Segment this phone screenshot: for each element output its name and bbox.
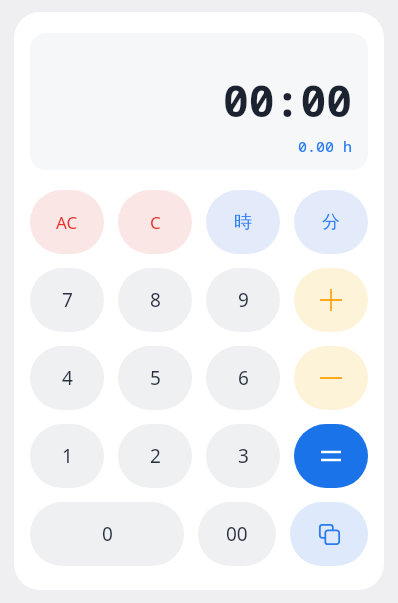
staticText: 0.00 h bbox=[297, 136, 352, 156]
staticText: 分 bbox=[322, 211, 340, 234]
button[interactable]: 分 bbox=[294, 190, 368, 254]
staticText: 時 bbox=[234, 211, 252, 234]
button[interactable]: C bbox=[118, 190, 192, 254]
staticText: 6 bbox=[238, 365, 249, 391]
button[interactable]: 7 bbox=[30, 268, 104, 332]
button[interactable]: 時 bbox=[206, 190, 280, 254]
button[interactable]: Minus bbox=[294, 346, 368, 410]
button[interactable]: Equals bbox=[294, 424, 368, 488]
staticText: 7 bbox=[62, 287, 73, 313]
staticText: 4 bbox=[62, 365, 73, 391]
button[interactable]: 5 bbox=[118, 346, 192, 410]
staticText: 8 bbox=[150, 287, 161, 313]
button[interactable]: 1 bbox=[30, 424, 104, 488]
staticText: 0 bbox=[102, 521, 113, 547]
button[interactable]: 8 bbox=[118, 268, 192, 332]
button[interactable]: 6 bbox=[206, 346, 280, 410]
staticText: 00:00 bbox=[223, 71, 352, 130]
button[interactable]: 2 bbox=[118, 424, 192, 488]
staticText: 3 bbox=[238, 443, 249, 469]
button[interactable]: 9 bbox=[206, 268, 280, 332]
staticText: 2 bbox=[150, 443, 161, 469]
button[interactable]: Plus bbox=[294, 268, 368, 332]
staticText: 1 bbox=[62, 443, 73, 469]
staticText: 00 bbox=[226, 521, 248, 547]
button[interactable]: Copy bbox=[290, 502, 368, 566]
button[interactable]: 0 bbox=[30, 502, 184, 566]
button[interactable]: 4 bbox=[30, 346, 104, 410]
staticText: C bbox=[150, 211, 161, 234]
button[interactable]: 00 bbox=[198, 502, 276, 566]
button[interactable]: 3 bbox=[206, 424, 280, 488]
button[interactable]: AC bbox=[30, 190, 104, 254]
staticText: 5 bbox=[150, 365, 161, 391]
staticText: 9 bbox=[238, 287, 249, 313]
staticText: AC bbox=[56, 211, 78, 234]
